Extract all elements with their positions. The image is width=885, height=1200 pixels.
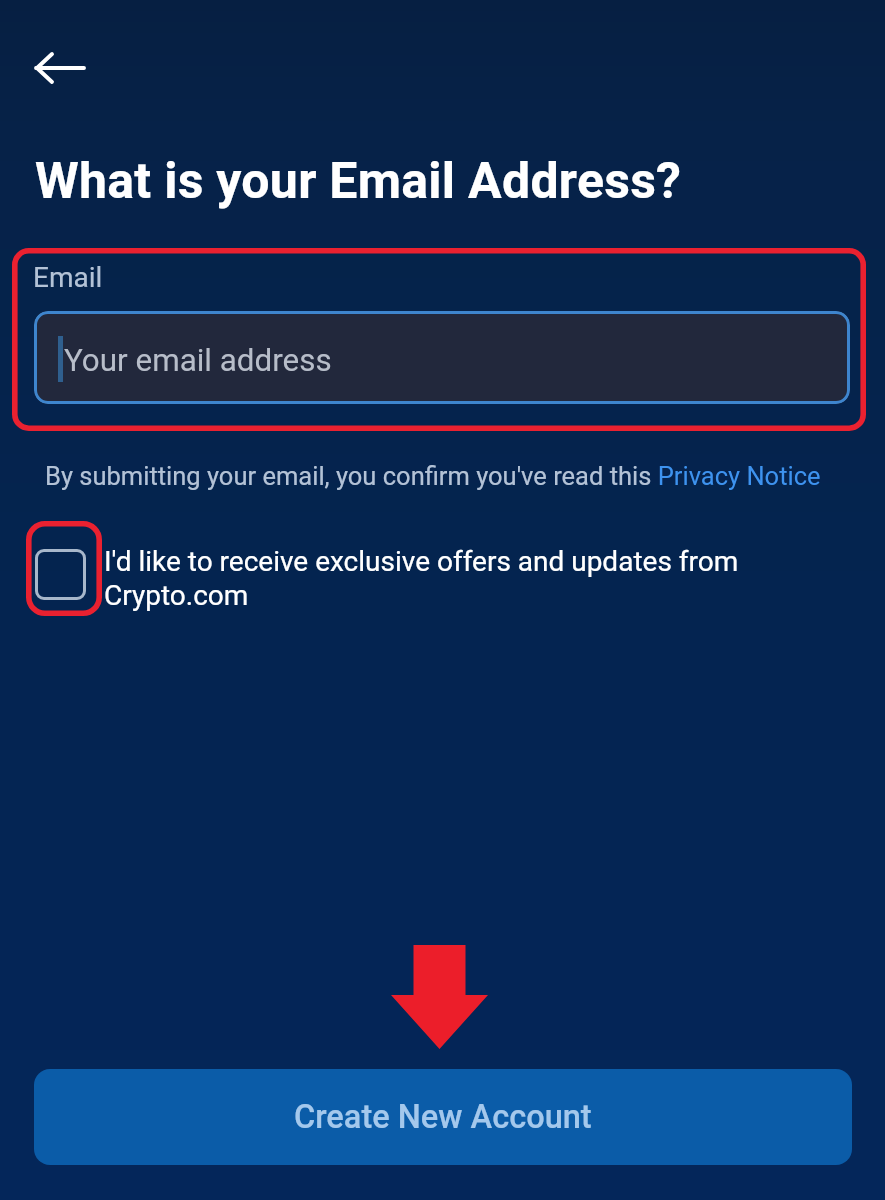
button[interactable]: Back: [14, 40, 92, 96]
button[interactable]: Your email address: [34, 311, 850, 404]
other: Receive exclusive offers checkbox: [35, 549, 86, 600]
button[interactable]: Privacy Notice: [655, 459, 822, 493]
button[interactable]: Create New Account: [34, 1069, 852, 1165]
staticText: Create New Account: [294, 1098, 592, 1136]
staticText: Email: [33, 261, 103, 294]
staticText: Your email address: [64, 342, 332, 379]
staticText: I'd like to receive exclusive offers and…: [104, 545, 754, 612]
staticText: By submitting your email, you confirm yo…: [45, 461, 821, 491]
staticText: What is your Email Address?: [35, 152, 682, 211]
button[interactable]: Receive exclusive offers checkbox: [35, 540, 754, 610]
